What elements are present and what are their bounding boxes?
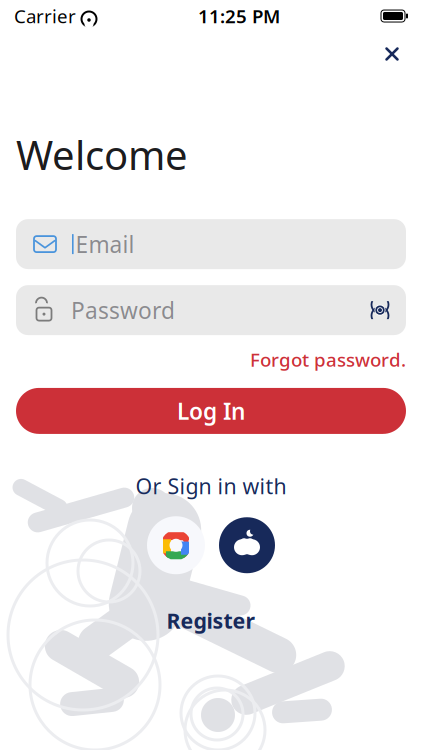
button[interactable]: Close [370,32,414,76]
staticText: Register [166,606,255,634]
staticText: Or Sign in with [135,472,286,500]
staticText: Carrier [14,4,76,28]
button[interactable]: Forgot password. [250,343,406,376]
button[interactable]: Log In [0,388,422,434]
staticText: Log In [177,396,245,426]
staticText: Email [76,229,135,259]
button[interactable]: Show password [358,288,402,332]
button[interactable]: Sign in with Apple [219,517,275,573]
button[interactable]: Register [156,600,265,640]
button[interactable]: Sign in with Google [147,516,205,574]
staticText: Welcome [16,128,188,181]
staticText: 11:25 PM [198,4,280,28]
staticText: Password [71,295,175,325]
button[interactable]: Email [0,219,422,269]
staticText: Forgot password. [250,347,406,372]
